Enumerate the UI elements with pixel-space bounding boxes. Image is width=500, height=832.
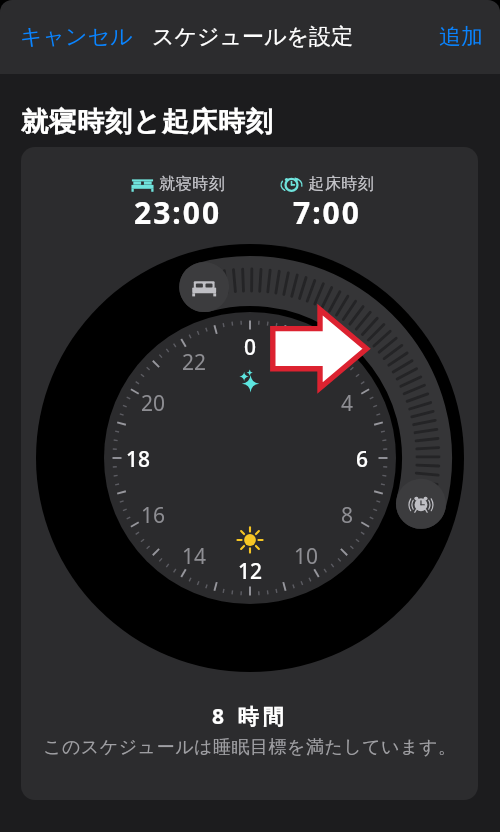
- other: Day: [236, 526, 264, 554]
- staticText: 7:00: [293, 192, 361, 233]
- staticText: 10: [294, 542, 319, 568]
- staticText: 8: [341, 501, 354, 527]
- button[interactable]: キャンセル: [14, 15, 139, 59]
- staticText: 18: [126, 445, 151, 471]
- staticText: 4: [341, 389, 354, 415]
- other: Night: [236, 367, 264, 395]
- staticText: スケジュールを設定: [152, 23, 354, 51]
- staticText: 16: [141, 501, 166, 527]
- staticText: 就寝時刻と起床時刻: [21, 105, 274, 139]
- staticText: 起床時刻: [308, 174, 374, 194]
- staticText: 2: [300, 348, 313, 374]
- staticText: キャンセル: [20, 23, 133, 51]
- staticText: 23:00: [134, 192, 222, 233]
- staticText: 0: [244, 333, 257, 359]
- staticText: 20: [141, 389, 166, 415]
- staticText: 12: [238, 557, 263, 583]
- staticText: 追加: [439, 23, 483, 51]
- staticText: 6: [356, 445, 369, 471]
- button[interactable]: 追加: [433, 15, 489, 59]
- staticText: 8 時間: [212, 702, 288, 731]
- staticText: 14: [182, 542, 207, 568]
- staticText: このスケジュールは睡眠目標を満たしています。: [43, 736, 457, 759]
- staticText: 就寝時刻: [159, 174, 225, 194]
- staticText: 22: [182, 348, 207, 374]
